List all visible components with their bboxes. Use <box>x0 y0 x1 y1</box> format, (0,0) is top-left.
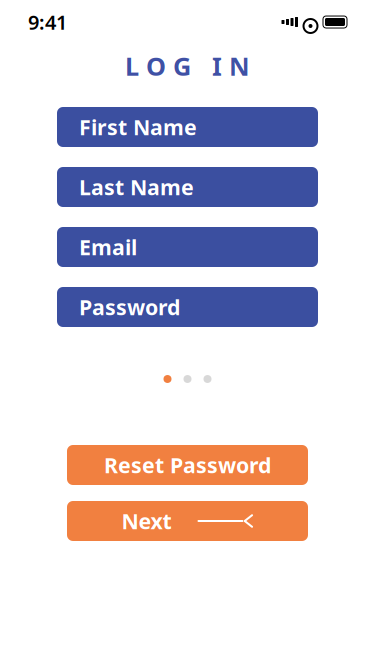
staticText: L O G I N <box>125 49 250 83</box>
button[interactable]: Last Name <box>57 167 318 207</box>
button[interactable]: Reset Password <box>67 445 308 485</box>
staticText: First Name <box>79 113 197 141</box>
staticText: Email <box>79 233 137 261</box>
staticText: 9:41 <box>28 9 67 35</box>
button[interactable]: First Name <box>57 107 318 147</box>
button[interactable]: Next <box>67 501 308 541</box>
button[interactable]: Password <box>57 287 318 327</box>
staticText: Reset Password <box>104 451 271 479</box>
staticText: Password <box>79 293 180 321</box>
button[interactable]: Email <box>57 227 318 267</box>
staticText: Next <box>121 507 171 535</box>
staticText: Last Name <box>79 173 194 201</box>
